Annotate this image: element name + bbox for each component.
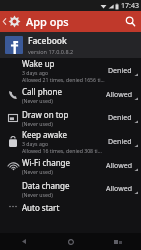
button[interactable]: Navigate up xyxy=(0,11,23,32)
button[interactable]: Data change xyxy=(0,177,141,200)
staticText: Facebook xyxy=(28,35,67,47)
button[interactable]: Search xyxy=(119,11,141,32)
button[interactable]: Auto start xyxy=(0,200,141,213)
staticText: Allowed xyxy=(106,90,132,100)
staticText: (Never used) xyxy=(22,97,53,104)
staticText: Allowed xyxy=(106,184,132,194)
staticText: (Never used) xyxy=(22,120,53,127)
staticText: version 17.0.0.8.2 xyxy=(28,48,74,55)
staticText: 3 days ago xyxy=(22,69,49,76)
button[interactable]: Wi-Fi change xyxy=(0,154,141,177)
staticText: Allowed 16 times, denied 308 times xyxy=(22,147,106,154)
staticText: Allowed xyxy=(106,161,132,171)
button[interactable]: Denied xyxy=(108,66,138,76)
button[interactable]: Keep awake xyxy=(0,129,141,154)
staticText: Auto start xyxy=(22,202,60,213)
button[interactable]: Allowed xyxy=(106,161,138,171)
staticText: Data change xyxy=(22,180,70,191)
staticText: Wi-Fi change xyxy=(22,157,71,168)
button[interactable]: Facebook xyxy=(0,32,141,58)
staticText: App ops xyxy=(26,14,69,29)
button[interactable]: Call phone xyxy=(0,83,141,106)
button[interactable]: Home xyxy=(47,233,94,250)
staticText: Denied xyxy=(108,113,132,123)
staticText: 17:43 xyxy=(121,1,139,11)
button[interactable]: Back xyxy=(0,233,47,250)
staticText: Draw on top xyxy=(22,109,69,120)
staticText: Keep awake xyxy=(22,129,68,140)
staticText: Denied xyxy=(108,66,132,76)
button[interactable]: Allowed xyxy=(106,90,138,100)
staticText: (Never used) xyxy=(22,191,53,198)
staticText: 3 days ago xyxy=(22,140,49,147)
staticText: Denied xyxy=(108,137,132,147)
button[interactable]: Denied xyxy=(108,137,138,147)
button[interactable]: Wake up xyxy=(0,58,141,83)
staticText: Wake up xyxy=(22,58,55,69)
button[interactable]: Allowed xyxy=(106,184,138,194)
button[interactable]: Recent apps xyxy=(94,233,141,250)
staticText: Allowed 21 times, denied 1656 times xyxy=(22,76,106,83)
button[interactable]: Draw on top xyxy=(0,106,141,129)
button[interactable]: Denied xyxy=(108,113,138,123)
staticText: Call phone xyxy=(22,86,62,97)
staticText: (Never used) xyxy=(22,168,53,175)
